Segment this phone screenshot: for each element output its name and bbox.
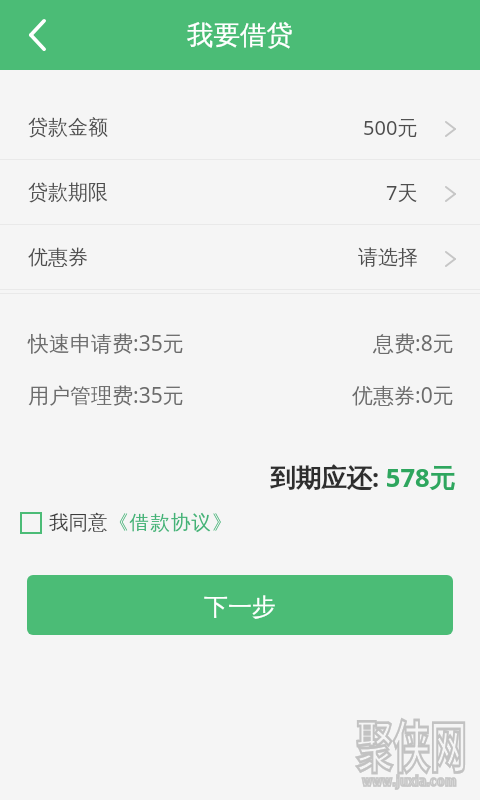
button[interactable]: 下一步 xyxy=(27,575,453,635)
button[interactable]: Back xyxy=(0,0,74,70)
staticText: 优惠券:0元 xyxy=(352,381,454,410)
staticText: 快速申请费:35元 xyxy=(28,329,184,358)
staticText: 请选择 xyxy=(358,245,418,270)
staticText: 优惠券 xyxy=(28,245,88,270)
staticText: 用户管理费:35元 xyxy=(28,381,184,410)
staticText: 下一步 xyxy=(204,592,276,622)
button[interactable]: 贷款金额 xyxy=(0,95,480,159)
staticText: 贷款期限 xyxy=(28,180,108,205)
button[interactable]: 优惠券 xyxy=(0,225,480,289)
staticText: 息费:8元 xyxy=(373,329,454,358)
staticText: 我同意 《借款协议》 xyxy=(49,510,234,535)
staticText: 到期应还: 578元 xyxy=(270,460,456,495)
staticText: 贷款金额 xyxy=(28,115,108,140)
button[interactable]: 贷款期限 xyxy=(0,160,480,224)
staticText: 7天 xyxy=(386,179,418,206)
button[interactable]: 我同意 《借款协议》 xyxy=(20,510,240,535)
staticText: 500元 xyxy=(363,114,418,141)
staticText: 我要借贷 xyxy=(187,18,293,51)
